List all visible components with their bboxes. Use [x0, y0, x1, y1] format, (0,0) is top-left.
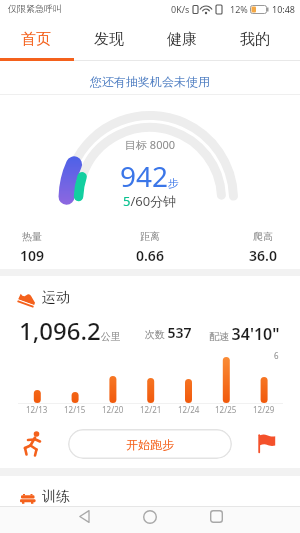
- button[interactable]: [21, 431, 44, 457]
- staticText: 仅限紧急呼叫: [8, 3, 62, 14]
- staticText: 目标 8000: [125, 137, 176, 152]
- staticText: 首页: [21, 30, 51, 49]
- staticText: 109: [20, 246, 45, 265]
- staticText: 5/60分钟: [123, 192, 177, 210]
- staticText: 12%: [230, 3, 248, 15]
- staticText: 爬高: [253, 230, 273, 243]
- staticText: 开始跑步: [126, 437, 174, 452]
- button[interactable]: 健康: [145, 17, 218, 61]
- staticText: 12/25: [215, 404, 237, 415]
- staticText: 1,096.2公里: [19, 314, 121, 347]
- staticText: 距离: [140, 230, 160, 243]
- staticText: 36.0: [249, 246, 277, 265]
- staticText: 训练: [42, 488, 70, 506]
- staticText: 6: [274, 350, 279, 361]
- button[interactable]: 运动: [0, 276, 300, 309]
- button[interactable]: 开始跑步: [68, 429, 232, 459]
- button[interactable]: 发现: [72, 17, 145, 61]
- staticText: 您还有抽奖机会未使用: [90, 74, 210, 89]
- button[interactable]: [258, 434, 276, 453]
- staticText: 10:48: [272, 3, 296, 15]
- button[interactable]: [183, 503, 249, 530]
- staticText: 942步: [120, 157, 180, 195]
- staticText: 12/15: [64, 404, 86, 415]
- staticText: 发现: [94, 30, 124, 49]
- button[interactable]: [51, 503, 117, 530]
- staticText: 热量: [22, 230, 42, 243]
- staticText: 12/13: [26, 404, 48, 415]
- staticText: 次数 537: [145, 323, 192, 342]
- staticText: 12/24: [178, 404, 200, 415]
- staticText: 12/21: [140, 404, 162, 415]
- staticText: 我的: [240, 30, 270, 49]
- button[interactable]: 训练: [0, 476, 300, 506]
- staticText: 运动: [42, 289, 70, 307]
- button[interactable]: [117, 503, 183, 530]
- staticText: 0.66: [136, 246, 164, 265]
- button[interactable]: 我的: [218, 17, 291, 61]
- staticText: 配速 34'10": [209, 323, 280, 345]
- staticText: 0K/s: [171, 3, 190, 15]
- button[interactable]: 您还有抽奖机会未使用: [0, 61, 300, 95]
- staticText: 12/29: [253, 404, 275, 415]
- button[interactable]: 首页: [0, 17, 72, 61]
- staticText: 12/20: [102, 404, 124, 415]
- staticText: 健康: [167, 30, 197, 49]
